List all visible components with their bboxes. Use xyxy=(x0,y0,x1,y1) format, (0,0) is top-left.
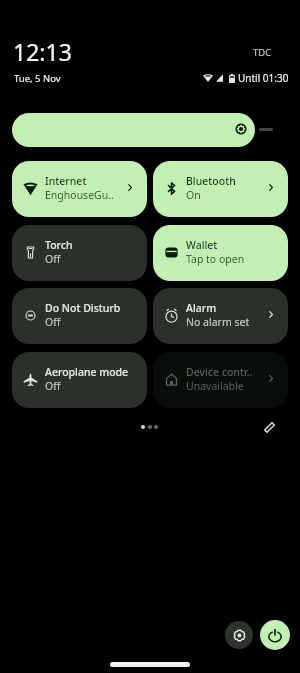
staticText: Off xyxy=(45,252,61,266)
staticText: Bluetooth xyxy=(186,174,236,188)
staticText: Aeroplane mode xyxy=(45,365,129,379)
button[interactable]: Bluetooth xyxy=(153,161,288,217)
staticText: Tue, 5 Nov xyxy=(14,72,61,85)
staticText: Off xyxy=(45,315,61,329)
staticText: Off xyxy=(45,379,61,393)
staticText: Device contr.. xyxy=(186,365,253,379)
staticText: EnghouseGu.. xyxy=(45,188,114,202)
button[interactable]: Wallet xyxy=(153,225,288,281)
button[interactable]: Torch xyxy=(12,225,147,281)
button[interactable]: Brightness xyxy=(12,113,255,147)
button[interactable]: Aeroplane mode xyxy=(12,352,147,408)
button[interactable]: Internet xyxy=(12,161,147,217)
button[interactable]: Power xyxy=(260,620,290,650)
staticText: TDC xyxy=(253,46,272,59)
staticText: No alarm set xyxy=(186,315,250,329)
button[interactable]: Do Not Disturb xyxy=(12,288,147,344)
button[interactable]: Alarm xyxy=(153,288,288,344)
staticText: Torch xyxy=(45,238,73,252)
button[interactable]: Edit tiles xyxy=(258,416,281,439)
staticText: 12:13 xyxy=(13,36,72,67)
staticText: Internet xyxy=(45,174,87,188)
staticText: Alarm xyxy=(186,301,217,315)
staticText: Until 01:30 xyxy=(238,71,289,85)
staticText: Tap to open xyxy=(186,252,245,266)
staticText: Wallet xyxy=(186,238,218,252)
staticText: Unavailable xyxy=(186,379,244,393)
staticText: Do Not Disturb xyxy=(45,301,121,315)
button[interactable]: Device contr.. xyxy=(153,352,288,408)
staticText: On xyxy=(186,188,201,202)
button[interactable]: Settings xyxy=(225,621,253,649)
